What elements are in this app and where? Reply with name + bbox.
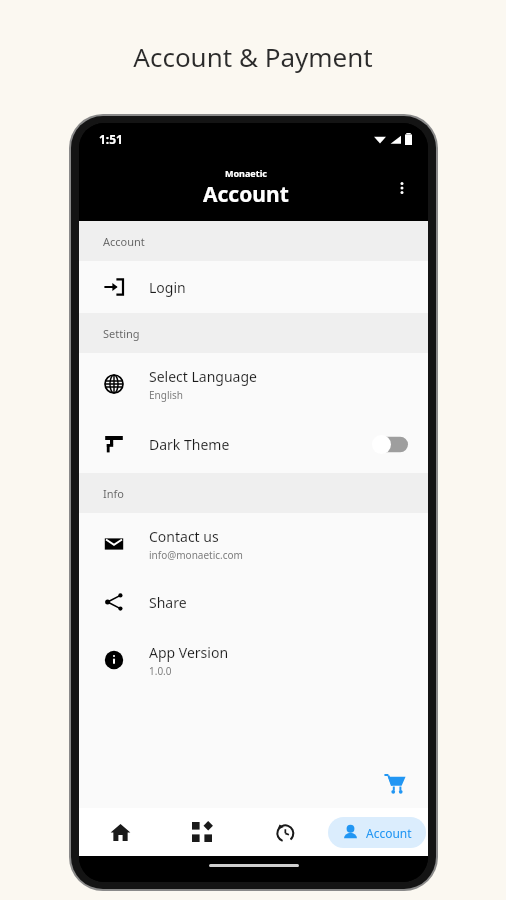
staticText: 1.0.0 xyxy=(149,664,172,678)
button[interactable]: Categories xyxy=(161,808,243,856)
staticText: Share xyxy=(149,593,187,612)
staticText: Setting xyxy=(103,326,140,341)
staticText: Info xyxy=(103,486,124,501)
button[interactable]: Dark Theme xyxy=(79,415,428,473)
button[interactable]: App Version xyxy=(79,629,428,691)
staticText: Monaetic xyxy=(225,167,267,179)
button[interactable]: History xyxy=(243,808,325,856)
staticText: Account & Payment xyxy=(133,39,373,74)
button[interactable]: Login xyxy=(79,261,428,313)
staticText: Login xyxy=(149,278,186,297)
button[interactable]: Dark theme toggle xyxy=(372,435,408,454)
staticText: Account xyxy=(366,825,412,841)
staticText: Contact us xyxy=(149,527,219,546)
button[interactable]: Account xyxy=(328,817,426,848)
staticText: English xyxy=(149,388,184,402)
staticText: 1:51 xyxy=(99,131,123,147)
staticText: App Version xyxy=(149,643,229,662)
staticText: Account xyxy=(203,180,289,209)
button[interactable]: Cart xyxy=(378,766,412,800)
staticText: Dark Theme xyxy=(149,435,230,454)
button[interactable]: More options xyxy=(382,168,422,208)
staticText: Select Language xyxy=(149,367,257,386)
button[interactable]: Share xyxy=(79,575,428,629)
button[interactable]: Home xyxy=(79,808,161,856)
staticText: Account xyxy=(103,234,145,249)
button[interactable]: Select Language xyxy=(79,353,428,415)
button[interactable]: Contact us xyxy=(79,513,428,575)
staticText: info@monaetic.com xyxy=(149,548,243,562)
